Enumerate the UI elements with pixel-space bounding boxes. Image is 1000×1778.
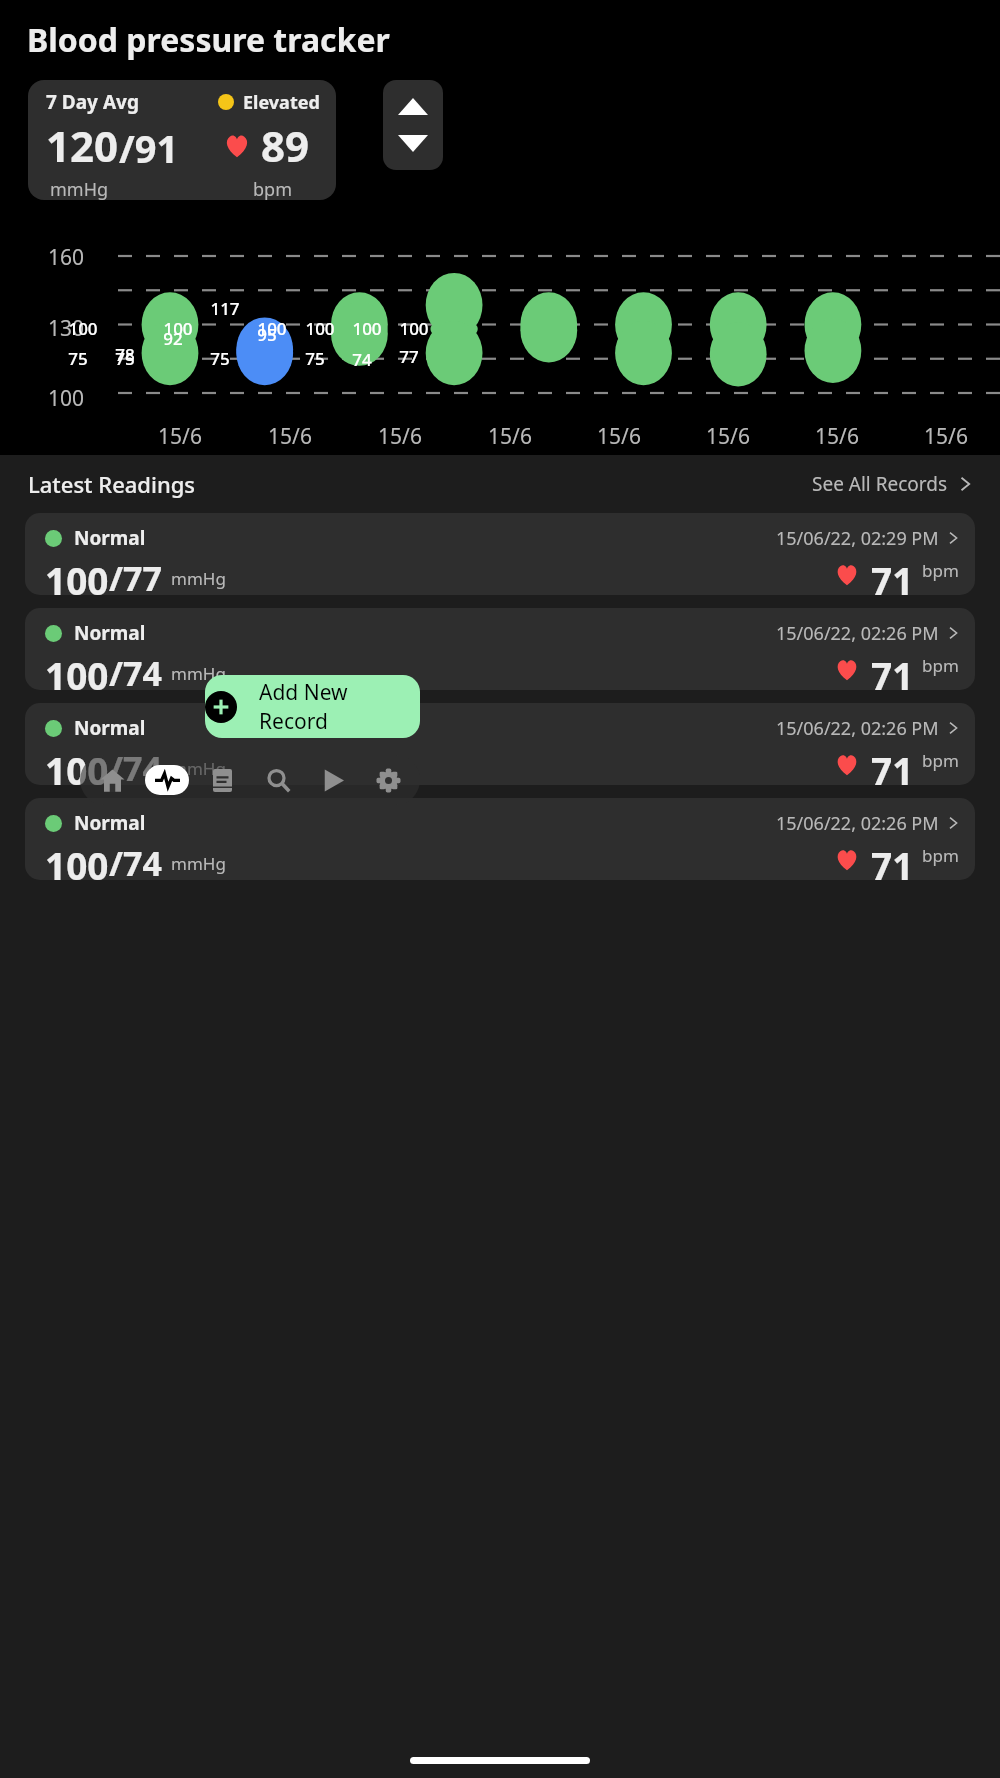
staticText: 95 xyxy=(257,323,277,346)
staticText: 15/6 xyxy=(597,422,641,451)
staticText: bpm xyxy=(922,559,959,582)
staticText: Blood pressure tracker xyxy=(27,18,390,62)
staticText: 15/6 xyxy=(268,422,312,451)
button[interactable]: Normal xyxy=(25,703,975,785)
staticText: 100 xyxy=(45,650,109,690)
staticText: 78 xyxy=(115,343,135,366)
staticText: Normal xyxy=(74,810,146,836)
staticText: 15/6 xyxy=(158,422,202,451)
staticText: 15/6 xyxy=(706,422,750,451)
staticText: 130 xyxy=(48,314,85,343)
staticText: Normal xyxy=(74,715,146,741)
staticText: 160 xyxy=(48,243,85,272)
button[interactable]: Normal xyxy=(25,513,975,595)
staticText: 71 xyxy=(871,555,914,595)
staticText: /77 xyxy=(109,555,163,595)
staticText: 15/6 xyxy=(378,422,422,451)
button[interactable]: Search xyxy=(256,758,300,802)
staticText: 100 xyxy=(257,317,287,340)
staticText: 75 xyxy=(210,347,230,370)
staticText: 75 xyxy=(68,347,88,370)
staticText: 15/6 xyxy=(488,422,532,451)
staticText: 71 xyxy=(871,650,914,690)
staticText: mmHg xyxy=(171,662,226,685)
button[interactable]: Home xyxy=(90,758,134,802)
staticText: 100 xyxy=(45,745,109,785)
staticText: bpm xyxy=(253,177,292,200)
staticText: Add New Record xyxy=(259,678,420,736)
staticText: 15/06/22, 02:29 PM xyxy=(776,526,939,551)
staticText: 89 xyxy=(261,117,310,174)
staticText: bpm xyxy=(922,749,959,772)
staticText: 70 xyxy=(48,455,73,484)
staticText: 117 xyxy=(210,297,240,320)
staticText: 100 xyxy=(45,840,109,880)
staticText: 100 xyxy=(48,384,85,413)
staticText: /74 xyxy=(109,840,163,880)
staticText: 100 xyxy=(163,317,193,340)
button[interactable]: Play xyxy=(311,758,355,802)
staticText: 100 xyxy=(68,317,98,340)
staticText: 15/06/22, 02:26 PM xyxy=(776,716,939,741)
staticText: mmHg xyxy=(171,757,226,780)
staticText: 15/6 xyxy=(924,422,968,451)
button[interactable]: Records xyxy=(200,758,244,802)
staticText: mmHg xyxy=(171,567,226,590)
staticText: bpm xyxy=(922,654,959,677)
staticText: 15/6 xyxy=(815,422,859,451)
button[interactable]: Settings xyxy=(366,758,410,802)
button[interactable]: See All Records xyxy=(812,471,972,497)
staticText: 120 xyxy=(46,117,119,174)
staticText: Normal xyxy=(74,620,146,646)
staticText: 40 xyxy=(48,525,73,554)
staticText: Elevated xyxy=(243,90,320,115)
staticText: See All Records xyxy=(812,471,948,497)
staticText: 100 xyxy=(399,317,429,340)
staticText: mmHg xyxy=(50,177,109,200)
button[interactable]: Normal xyxy=(25,798,975,880)
button[interactable]: Scroll up or down xyxy=(383,80,443,170)
staticText: 100 xyxy=(305,317,335,340)
staticText: mmHg xyxy=(171,852,226,875)
staticText: 100 xyxy=(45,555,109,595)
staticText: /74 xyxy=(109,745,163,785)
staticText: 15/06/22, 02:26 PM xyxy=(776,811,939,836)
button[interactable]: Normal xyxy=(25,608,975,690)
button[interactable]: Blood pressure xyxy=(145,765,189,795)
staticText: bpm xyxy=(922,844,959,867)
staticText: /74 xyxy=(109,650,163,690)
staticText: 100 xyxy=(352,317,382,340)
staticText: 77 xyxy=(399,345,419,368)
staticText: 75 xyxy=(305,347,325,370)
staticText: 71 xyxy=(871,745,914,785)
staticText: /91 xyxy=(119,122,179,174)
staticText: 92 xyxy=(163,327,183,350)
staticText: 74 xyxy=(352,348,372,371)
staticText: 15/06/22, 02:26 PM xyxy=(776,621,939,646)
staticText: Latest Readings xyxy=(28,469,196,499)
staticText: Normal xyxy=(74,525,146,551)
staticText: 7 Day Avg xyxy=(46,89,139,115)
button[interactable]: 7 Day Avg xyxy=(28,80,336,200)
staticText: 71 xyxy=(871,840,914,880)
button[interactable]: Add New Record xyxy=(205,675,420,738)
staticText: 75 xyxy=(115,347,135,370)
